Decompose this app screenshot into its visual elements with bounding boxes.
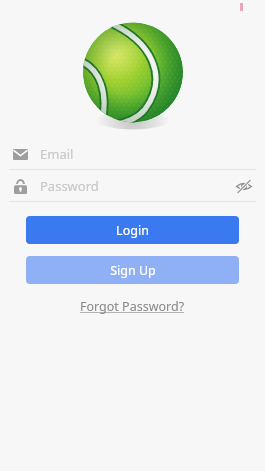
- button[interactable]: Forgot Password?: [72, 295, 193, 318]
- button[interactable]: Email: [0, 138, 265, 169]
- button[interactable]: Sign Up: [26, 256, 239, 284]
- button[interactable]: Password: [0, 170, 265, 201]
- button[interactable]: Login: [26, 216, 239, 244]
- staticText: Sign Up: [110, 262, 156, 279]
- staticText: Email: [40, 145, 74, 163]
- staticText: Password: [40, 177, 99, 195]
- staticText: Forgot Password?: [80, 298, 185, 315]
- button[interactable]: Show password: [234, 176, 254, 196]
- staticText: Login: [116, 222, 149, 239]
